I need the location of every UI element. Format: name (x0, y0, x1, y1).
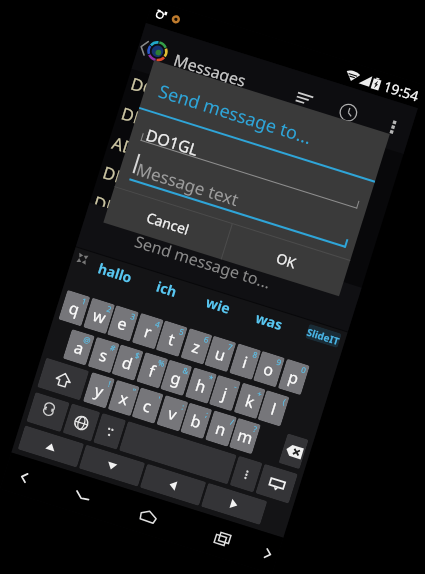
button[interactable]: Down (79, 444, 145, 487)
button[interactable]: ( (257, 390, 290, 427)
staticText: ADM-1 (109, 131, 168, 169)
button[interactable]: # (88, 337, 120, 373)
button[interactable]: + (234, 382, 266, 419)
staticText: wie (204, 292, 233, 318)
button[interactable]: wie (193, 288, 243, 322)
button[interactable]: Right (201, 483, 267, 525)
staticText: % (156, 356, 166, 369)
button[interactable]: Symbols (26, 392, 70, 432)
button[interactable]: 5 (156, 320, 188, 357)
staticText: r (141, 320, 155, 343)
staticText: a (72, 336, 87, 360)
button[interactable]: 6 (180, 328, 213, 365)
staticText: b (188, 409, 204, 433)
button[interactable]: 2 (83, 298, 115, 334)
staticText: g (168, 366, 184, 390)
staticText: Messages (171, 49, 249, 92)
button[interactable]: / (205, 410, 237, 447)
staticText: 5 (178, 325, 186, 337)
staticText: n (213, 417, 229, 441)
staticText: 2 (105, 303, 113, 315)
button[interactable]: hallo (90, 256, 140, 289)
button[interactable]: Cancel (103, 187, 232, 259)
button[interactable]: Backspace (278, 433, 309, 469)
button[interactable]: - (209, 375, 241, 411)
button[interactable]: was (244, 304, 294, 338)
staticText: o (261, 358, 277, 382)
button[interactable]: Forward (255, 541, 280, 566)
button[interactable]: Period (229, 456, 263, 493)
button[interactable]: Hide keyboard (255, 464, 298, 504)
button[interactable]: ; (180, 402, 212, 439)
button[interactable]: DL3ABC (86, 185, 367, 300)
staticText: ! (107, 378, 113, 389)
button[interactable]: Hide keyboard (70, 483, 95, 508)
staticText: i (240, 351, 251, 374)
staticText: Send message to... (132, 230, 274, 294)
button[interactable]: DE8MSG (114, 96, 395, 211)
button[interactable]: Send message to... (76, 202, 362, 331)
staticText: ( (281, 396, 288, 407)
button[interactable]: @ (63, 329, 95, 366)
staticText: l (268, 398, 280, 420)
button[interactable]: Messages (131, 23, 418, 154)
button[interactable]: 9 (253, 351, 285, 388)
button[interactable]: Home (136, 504, 161, 529)
staticText: : (180, 401, 187, 412)
button[interactable]: Language (62, 403, 100, 442)
staticText: " (131, 385, 138, 397)
button[interactable]: ' (131, 387, 164, 424)
button[interactable]: Up (18, 425, 84, 468)
staticText: SlideIT (305, 325, 342, 348)
staticText: @ (82, 333, 93, 346)
staticText: 6 (203, 333, 211, 345)
button[interactable]: Shift (37, 357, 89, 400)
button[interactable]: ! (83, 372, 115, 409)
button[interactable]: 7 (204, 335, 236, 372)
button[interactable]: DE2HTM (95, 156, 376, 270)
button[interactable]: 0 (278, 359, 310, 395)
button[interactable]: History (332, 96, 365, 129)
button[interactable]: OK (222, 224, 350, 296)
staticText: f (146, 359, 158, 382)
button[interactable]: & (160, 359, 192, 396)
staticText: t (165, 328, 178, 350)
button[interactable]: More options (377, 110, 409, 143)
button[interactable]: ich (141, 272, 191, 306)
staticText: w (90, 304, 109, 329)
staticText: k (242, 390, 258, 413)
staticText: s (96, 344, 111, 367)
button[interactable]: * (185, 367, 217, 404)
button[interactable]: " (108, 380, 140, 416)
staticText: ? (252, 423, 259, 435)
button[interactable]: % (136, 352, 168, 389)
button[interactable]: Back (12, 465, 37, 490)
staticText: was (253, 308, 286, 334)
button[interactable]: Space (119, 421, 237, 485)
staticText: h (193, 374, 209, 398)
button[interactable]: 4 (132, 313, 164, 350)
staticText: x (116, 387, 132, 410)
button[interactable]: Sort (288, 83, 321, 115)
button[interactable]: ? (229, 418, 261, 454)
button[interactable]: 1 (58, 290, 90, 327)
button[interactable]: SlideIT (305, 324, 342, 348)
button[interactable]: 3 (107, 305, 139, 342)
button[interactable]: Left (140, 464, 206, 506)
button[interactable]: Recents (210, 527, 235, 552)
button[interactable]: 8 (229, 343, 261, 380)
button[interactable]: DO1GL (123, 67, 404, 182)
staticText: Message text (133, 157, 241, 211)
staticText: DL3ABC (91, 190, 159, 231)
staticText: Send message to... (156, 79, 315, 150)
staticText: 8 (251, 348, 259, 360)
button[interactable]: $ (111, 344, 144, 381)
staticText: 9 (275, 356, 283, 368)
button[interactable]: : (156, 395, 188, 432)
button[interactable]: Comma (93, 413, 126, 450)
staticText: OK (274, 248, 299, 272)
button[interactable]: ADM-1 (104, 126, 385, 241)
staticText: DO1GL (128, 72, 189, 111)
staticText: v (165, 402, 180, 426)
staticText: # (109, 341, 118, 354)
